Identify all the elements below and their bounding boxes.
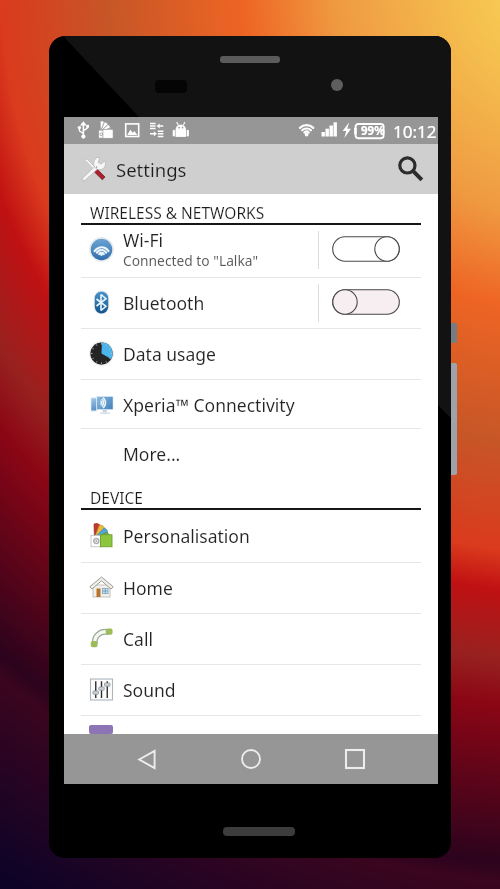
staticText: Sound [123, 678, 176, 702]
button[interactable]: Personalisation [64, 510, 438, 561]
staticText: Connected to "Lalka" [123, 251, 259, 270]
button[interactable]: Back [95, 734, 199, 784]
button[interactable]: Data usage [64, 328, 438, 379]
staticText: Settings [116, 157, 187, 182]
button[interactable]: Wi-Fi [64, 224, 438, 275]
button[interactable]: Toggle Wi-Fi [319, 224, 438, 275]
button[interactable]: More... [64, 428, 438, 479]
button[interactable]: Settings [64, 144, 264, 194]
button[interactable]: Home [64, 562, 438, 613]
staticText: WIRELESS & NETWORKS [90, 202, 265, 223]
button[interactable]: Home [199, 734, 303, 784]
button[interactable]: Search [382, 144, 438, 194]
staticText: Bluetooth [123, 291, 205, 315]
staticText: Data usage [123, 342, 216, 366]
button[interactable]: Xperia™ Connectivity [64, 379, 438, 430]
staticText: Personalisation [123, 524, 250, 548]
button[interactable]: Sound [64, 664, 438, 715]
staticText: Xperia™ Connectivity [123, 393, 295, 417]
button[interactable]: Call [64, 613, 438, 664]
button[interactable]: Recent apps [303, 734, 407, 784]
staticText: Home [123, 576, 173, 600]
button[interactable]: Toggle Bluetooth [319, 277, 438, 328]
staticText: 99% [361, 123, 385, 139]
button[interactable]: Bluetooth [64, 277, 438, 328]
staticText: DEVICE [90, 487, 143, 508]
staticText: 10:12 [393, 120, 437, 143]
staticText: Call [123, 627, 153, 651]
staticText: Wi-Fi [123, 228, 164, 252]
staticText: More... [123, 442, 181, 466]
